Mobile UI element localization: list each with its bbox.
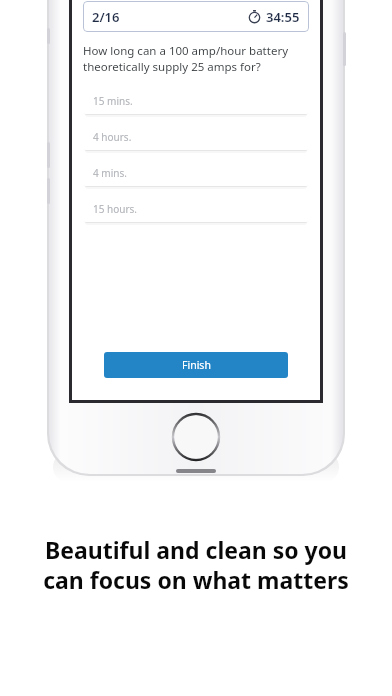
staticText: Beautiful and clean so you can focus on … xyxy=(28,534,364,595)
button[interactable]: 15 hours. xyxy=(83,195,309,222)
staticText: 4 hours. xyxy=(93,130,132,144)
button[interactable]: 4 hours. xyxy=(83,123,309,150)
staticText: 15 mins. xyxy=(93,94,133,108)
other: Home xyxy=(172,413,220,461)
staticText: How long can a 100 amp/hour battery theo… xyxy=(83,43,309,74)
staticText: 2/16 xyxy=(92,8,120,26)
staticText: 4 mins. xyxy=(93,166,127,180)
staticText: Finish xyxy=(182,358,211,372)
other: Timer xyxy=(248,10,261,23)
button[interactable]: Finish xyxy=(104,352,288,378)
button[interactable]: 15 mins. xyxy=(83,87,309,114)
button[interactable]: 2/16 xyxy=(83,1,309,32)
staticText: 15 hours. xyxy=(93,202,138,216)
button[interactable]: 4 mins. xyxy=(83,159,309,186)
staticText: 34:55 xyxy=(266,8,300,26)
